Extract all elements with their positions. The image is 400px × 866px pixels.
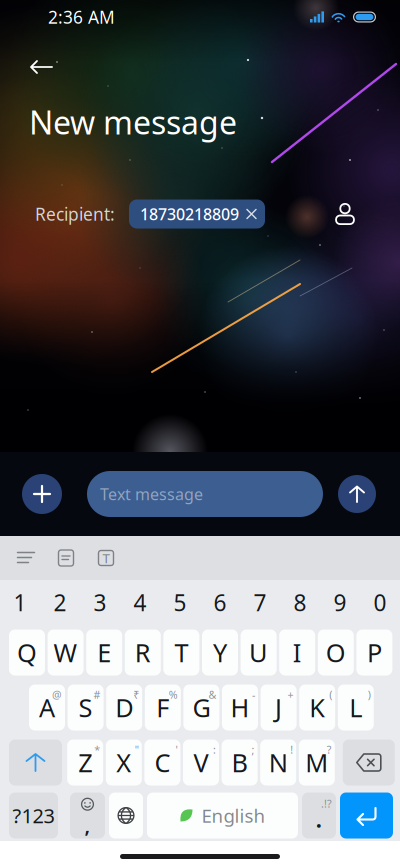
button[interactable]: M xyxy=(299,739,335,785)
staticText: : xyxy=(213,742,216,757)
button[interactable]: 18730218809 xyxy=(129,199,265,228)
staticText: Recipient: xyxy=(35,202,115,225)
button[interactable]: Back xyxy=(24,52,58,82)
button[interactable]: Backspace xyxy=(343,739,395,785)
staticText: 4 xyxy=(133,587,146,617)
staticText: Q xyxy=(17,636,37,669)
staticText: T xyxy=(102,549,109,567)
staticText: New message xyxy=(29,101,237,143)
staticText: ₹ xyxy=(133,687,139,702)
staticText: Z xyxy=(78,746,92,779)
button[interactable]: O xyxy=(318,629,354,675)
button[interactable]: 7 xyxy=(240,581,280,623)
button[interactable]: Q xyxy=(9,629,45,675)
button[interactable]: Emoji and comma xyxy=(70,792,105,838)
button[interactable]: 5 xyxy=(160,581,200,623)
staticText: C xyxy=(154,746,170,779)
staticText: 9 xyxy=(333,587,346,617)
staticText: D xyxy=(115,691,133,724)
button[interactable]: Choose contact xyxy=(328,199,362,229)
staticText: % xyxy=(169,687,178,702)
staticText: - xyxy=(252,687,255,702)
button[interactable]: N xyxy=(260,739,296,785)
staticText: ?123 xyxy=(12,802,54,829)
button[interactable]: Keyboard layout xyxy=(9,541,43,575)
button[interactable]: J xyxy=(261,684,297,730)
button[interactable]: V xyxy=(183,739,219,785)
button[interactable]: ?123 xyxy=(9,792,58,838)
button[interactable]: Switch language xyxy=(109,792,143,838)
staticText: * xyxy=(94,742,100,757)
button[interactable]: Z xyxy=(67,739,103,785)
staticText: A xyxy=(39,691,55,724)
button[interactable]: 1 xyxy=(0,581,40,623)
button[interactable]: B xyxy=(222,739,258,785)
staticText: Text message xyxy=(100,483,203,505)
button[interactable]: D xyxy=(106,684,142,730)
staticText: ) xyxy=(368,687,371,702)
button[interactable]: Y xyxy=(202,629,238,675)
button[interactable]: Clipboard xyxy=(49,541,83,575)
staticText: ' xyxy=(175,742,177,757)
button[interactable]: 3 xyxy=(80,581,120,623)
button[interactable]: 2 xyxy=(40,581,80,623)
button[interactable]: U xyxy=(241,629,277,675)
button[interactable]: E xyxy=(86,629,122,675)
button[interactable]: F xyxy=(145,684,181,730)
staticText: ? xyxy=(327,742,332,757)
button[interactable]: 9 xyxy=(320,581,360,623)
staticText: ! xyxy=(290,742,293,757)
staticText: W xyxy=(54,636,78,669)
button[interactable]: Text style xyxy=(89,541,123,575)
button[interactable]: T xyxy=(163,629,199,675)
button[interactable]: P xyxy=(356,629,392,675)
button[interactable]: H xyxy=(222,684,258,730)
button[interactable]: X xyxy=(106,739,142,785)
staticText: ; xyxy=(252,742,255,757)
staticText: 1 xyxy=(13,587,26,617)
staticText: E xyxy=(97,636,111,669)
button[interactable]: Period xyxy=(302,792,336,838)
button[interactable]: 4 xyxy=(120,581,160,623)
staticText: M xyxy=(305,746,328,779)
button[interactable]: Enter xyxy=(340,792,393,838)
staticText: I xyxy=(293,636,302,669)
button[interactable]: R xyxy=(125,629,161,675)
button[interactable]: 0 xyxy=(360,581,400,623)
staticText: ( xyxy=(329,687,332,702)
staticText: + xyxy=(288,687,294,702)
staticText: P xyxy=(367,636,382,669)
button[interactable]: Send xyxy=(338,475,376,513)
staticText: V xyxy=(193,746,208,779)
staticText: @ xyxy=(52,687,62,702)
button[interactable]: W xyxy=(48,629,84,675)
staticText: S xyxy=(79,691,93,724)
staticText: .!? xyxy=(321,796,332,811)
staticText: " xyxy=(135,742,139,757)
staticText: # xyxy=(94,687,101,702)
staticText: 6 xyxy=(213,587,226,617)
button[interactable]: L xyxy=(338,684,374,730)
button[interactable]: A xyxy=(29,684,65,730)
button[interactable]: C xyxy=(144,739,180,785)
staticText: B xyxy=(232,746,248,779)
button[interactable]: English xyxy=(147,792,298,838)
button[interactable]: S xyxy=(68,684,104,730)
button[interactable]: Add attachment xyxy=(22,474,62,514)
button[interactable]: K xyxy=(299,684,335,730)
staticText: R xyxy=(135,636,151,669)
button[interactable]: 8 xyxy=(280,581,320,623)
button[interactable]: Text message xyxy=(87,471,323,517)
button[interactable]: G xyxy=(183,684,219,730)
staticText: 5 xyxy=(173,587,186,617)
staticText: N xyxy=(269,746,288,779)
staticText: O xyxy=(326,636,346,669)
button[interactable]: Shift xyxy=(9,739,62,785)
button[interactable]: I xyxy=(279,629,315,675)
staticText: F xyxy=(156,691,169,724)
staticText: 2 xyxy=(53,587,66,617)
staticText: . xyxy=(315,803,322,834)
staticText: 8 xyxy=(293,587,306,617)
button[interactable]: 6 xyxy=(200,581,240,623)
staticText: , xyxy=(84,812,90,838)
